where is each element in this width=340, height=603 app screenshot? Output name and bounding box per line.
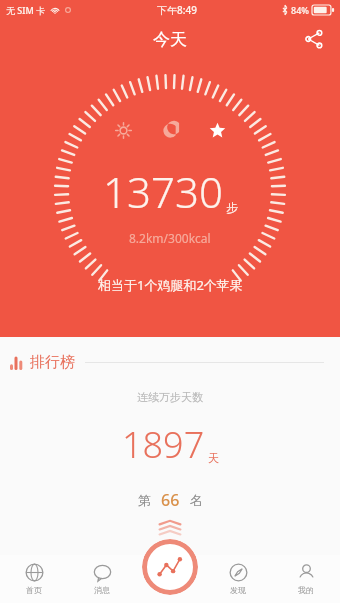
button[interactable]: 我的 bbox=[272, 555, 340, 603]
staticText: 第 bbox=[138, 492, 151, 508]
button[interactable]: 排行榜 bbox=[10, 353, 324, 372]
staticText: 无 SIM 卡 bbox=[6, 4, 46, 16]
button[interactable]: 发现 bbox=[204, 555, 272, 603]
staticText: 今天 bbox=[153, 29, 187, 50]
staticText: 我的 bbox=[298, 585, 314, 595]
staticText: 步 bbox=[226, 200, 238, 215]
staticText: 排行榜 bbox=[30, 353, 75, 372]
staticText: 13730 bbox=[103, 163, 223, 220]
button[interactable]: 首页 bbox=[0, 555, 68, 603]
staticText: 消息 bbox=[94, 585, 110, 595]
staticText: 发现 bbox=[230, 585, 246, 595]
staticText: 名 bbox=[190, 492, 203, 508]
staticText: 66 bbox=[161, 489, 180, 511]
staticText: 连续万步天数 bbox=[0, 390, 340, 404]
button[interactable]: Start activity bbox=[142, 539, 198, 595]
staticText: 84% bbox=[291, 4, 309, 16]
staticText: 天 bbox=[208, 451, 219, 465]
staticText: 相当于1个鸡腿和2个苹果 bbox=[98, 276, 243, 294]
staticText: 首页 bbox=[26, 585, 42, 595]
staticText: 1897 bbox=[122, 420, 205, 469]
button[interactable]: 消息 bbox=[68, 555, 136, 603]
button[interactable]: Share bbox=[298, 23, 330, 55]
staticText: 下午8:49 bbox=[157, 3, 197, 17]
staticText: 8.2km/300kcal bbox=[129, 230, 211, 246]
